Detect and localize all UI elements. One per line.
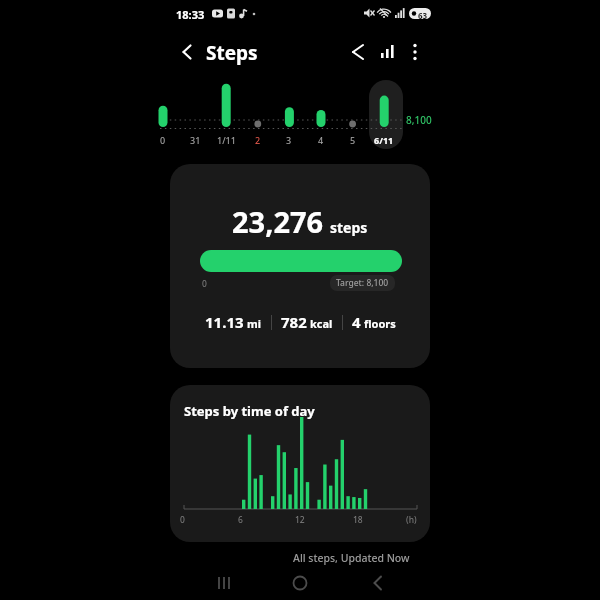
staticText: 23,276 xyxy=(232,202,324,241)
staticText: 0 xyxy=(160,134,166,146)
staticText: 5 xyxy=(350,134,356,146)
staticText: 12 xyxy=(295,514,305,526)
button[interactable]: Steps by time of day xyxy=(170,385,430,542)
staticText: 18 xyxy=(353,514,363,526)
button[interactable] xyxy=(369,80,403,149)
button[interactable]: 23,276 xyxy=(170,164,430,368)
staticText: 0 xyxy=(180,514,185,526)
staticText: mi xyxy=(247,316,262,331)
staticText: 11.13 xyxy=(205,312,244,332)
staticText: Target: 8,100 xyxy=(336,277,389,289)
staticText: 3 xyxy=(286,134,292,146)
staticText: floors xyxy=(364,316,396,331)
button[interactable]: Back xyxy=(172,37,202,67)
staticText: 6 xyxy=(238,514,243,526)
staticText: 63 xyxy=(418,10,428,21)
button[interactable]: More options xyxy=(400,37,430,67)
staticText: steps xyxy=(330,218,368,237)
staticText: Steps by time of day xyxy=(184,402,315,420)
staticText: 0 xyxy=(202,278,207,290)
staticText: 2 xyxy=(255,134,261,146)
button[interactable]: Share xyxy=(343,37,373,67)
staticText: 1/11 xyxy=(217,134,236,146)
staticText: 31 xyxy=(190,134,201,146)
staticText: 18:33 xyxy=(176,7,205,22)
button[interactable]: Back xyxy=(358,566,398,600)
staticText: 4 xyxy=(318,134,324,146)
staticText: 6/11 xyxy=(374,134,394,146)
button[interactable]: Chart view xyxy=(373,37,403,67)
staticText: Steps xyxy=(206,40,258,66)
staticText: 782 xyxy=(281,312,307,332)
staticText: (h) xyxy=(406,514,417,526)
button[interactable]: Home xyxy=(280,566,320,600)
staticText: All steps, Updated Now xyxy=(293,551,410,565)
button[interactable]: Recent apps xyxy=(204,566,244,600)
staticText: kcal xyxy=(310,316,333,331)
staticText: 8,100 xyxy=(406,113,432,127)
staticText: 4 xyxy=(352,312,361,332)
